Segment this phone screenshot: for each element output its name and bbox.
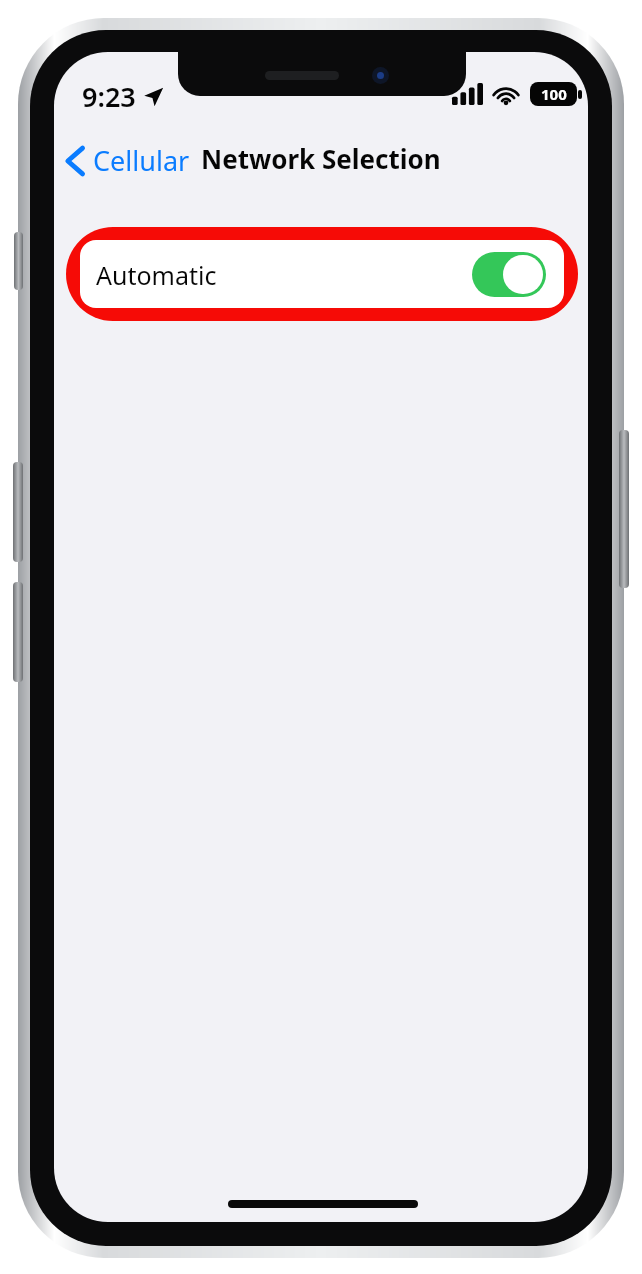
staticText: Cellular xyxy=(93,142,190,179)
staticText: 9:23 xyxy=(82,78,136,115)
staticText: Automatic xyxy=(96,258,217,292)
button[interactable]: Automatic xyxy=(80,240,564,308)
button[interactable]: Cellular xyxy=(62,138,194,183)
staticText: Network Selection xyxy=(201,141,441,176)
button[interactable]: Automatic network selection toggle xyxy=(472,252,546,297)
staticText: 100 xyxy=(541,84,567,104)
